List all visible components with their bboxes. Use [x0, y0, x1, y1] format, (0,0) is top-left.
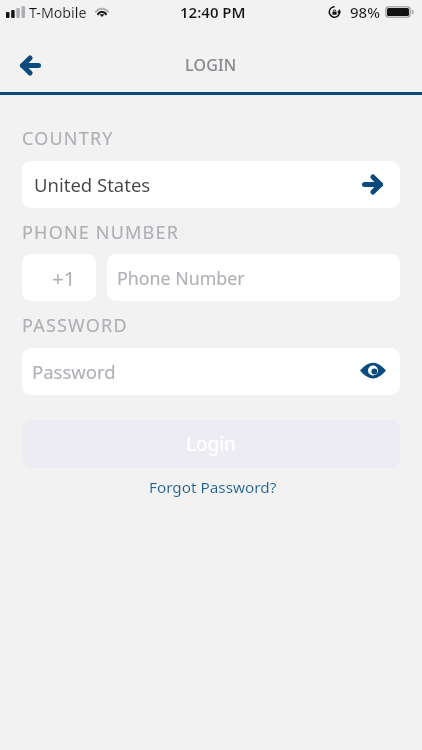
staticText: 98%: [350, 2, 380, 22]
staticText: LOGIN: [185, 54, 237, 76]
staticText: Password: [32, 359, 116, 384]
staticText: PASSWORD: [22, 313, 128, 338]
staticText: PHONE NUMBER: [22, 220, 180, 245]
staticText: United States: [34, 172, 151, 197]
staticText: 12:40 PM: [180, 2, 246, 22]
button[interactable]: Back: [9, 44, 51, 86]
staticText: Login: [186, 431, 236, 457]
button[interactable]: Show password: [359, 357, 387, 383]
button[interactable]: United States: [22, 161, 400, 208]
button[interactable]: Password: [22, 348, 400, 395]
button[interactable]: Forgot Password?: [143, 474, 283, 501]
staticText: T-Mobile: [29, 3, 87, 22]
button[interactable]: Phone Number: [107, 254, 400, 301]
staticText: +1: [52, 264, 76, 292]
button[interactable]: +1: [22, 254, 96, 301]
staticText: COUNTRY: [22, 126, 114, 151]
staticText: Phone Number: [117, 266, 245, 290]
